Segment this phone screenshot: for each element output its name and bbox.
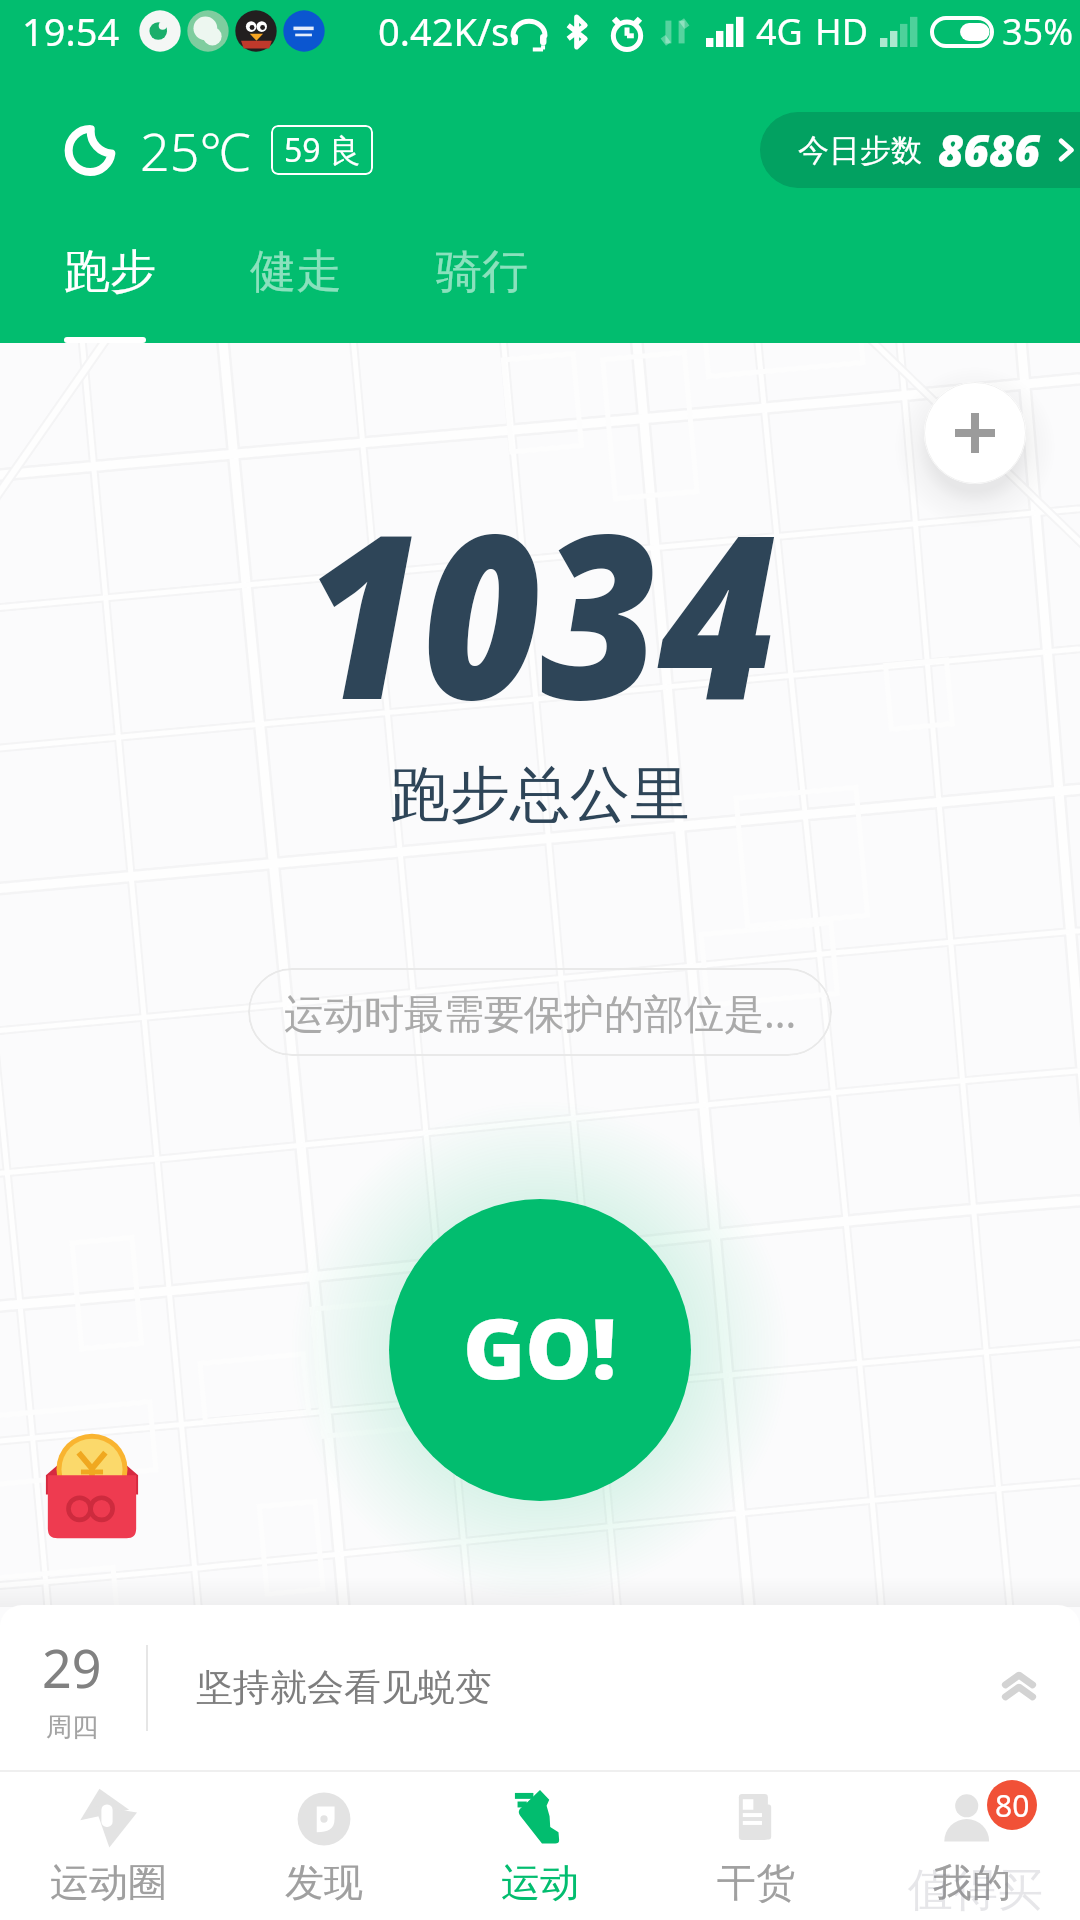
staticText: 值得买 [908,1862,1043,1919]
staticText: GO! [463,1289,617,1403]
staticText: 运动时最需要保护的部位是... [284,985,797,1040]
button[interactable]: 29 [0,1605,1080,1770]
staticText: 我的 [933,1858,1011,1907]
staticText: 35% [1002,7,1074,56]
staticText: HD [815,7,868,56]
staticText: 59 良 [284,128,361,172]
button[interactable]: 今日步数 [760,112,1080,188]
staticText: 健走 [250,243,342,301]
staticText: 周四 [46,1711,98,1744]
staticText: 29 [42,1632,102,1703]
button[interactable]: Weather [64,112,373,188]
staticText: 坚持就会看见蜕变 [196,1664,492,1711]
staticText: 今日步数 [798,131,922,170]
staticText: 跑步 [64,243,156,301]
button[interactable]: 发现 [216,1772,432,1920]
button[interactable]: 运动时最需要保护的部位是... [248,968,832,1056]
staticText: 80 [995,1785,1030,1826]
button[interactable]: Add [924,382,1026,484]
button[interactable]: 健走 [250,243,342,343]
button[interactable]: 干货 [648,1772,864,1920]
staticText: 19:54 [22,5,120,57]
staticText: 跑步总公里 [390,757,690,833]
button[interactable]: Expand [982,1651,1056,1725]
staticText: 运动 [501,1858,579,1907]
staticText: 25℃ [140,115,251,186]
staticText: 4G [756,7,803,56]
staticText: 0.42K/s [378,5,510,57]
button[interactable]: 运动 [432,1772,648,1920]
staticText: 发现 [285,1858,363,1907]
button[interactable]: 跑步 [64,243,156,343]
button[interactable]: 运动圈 [0,1772,216,1920]
other: Weather [64,121,122,179]
staticText: 1034 [304,455,777,766]
staticText: 8686 [938,120,1041,180]
button[interactable]: Red packet [44,1420,140,1540]
button[interactable]: GO! [389,1199,691,1501]
staticText: 干货 [717,1858,795,1907]
staticText: 骑行 [436,243,528,301]
staticText: 运动圈 [50,1858,167,1907]
button[interactable]: 骑行 [436,243,528,343]
button[interactable]: 80 [864,1772,1080,1920]
